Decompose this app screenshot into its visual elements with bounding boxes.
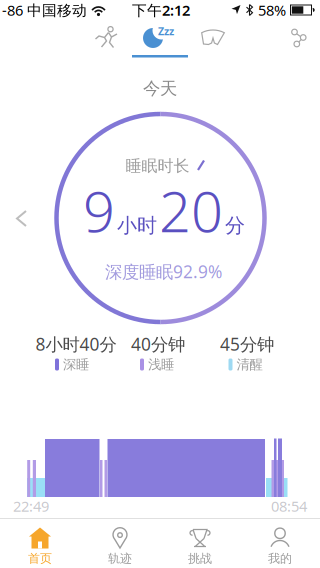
staticText: -86 中国移动: [2, 0, 87, 20]
staticText: 清醒: [236, 356, 262, 373]
staticText: 下午2:12: [132, 0, 190, 20]
button[interactable]: 轨迹: [80, 518, 160, 568]
staticText: 睡眠时长: [125, 156, 189, 176]
button[interactable]: 挑战: [160, 518, 240, 568]
staticText: 小时: [117, 213, 157, 238]
staticText: 轨迹: [108, 551, 132, 566]
staticText: 8小时40分: [35, 332, 116, 355]
button[interactable]: 体重: [200, 29, 226, 45]
staticText: 我的: [268, 551, 292, 566]
button[interactable]: 首页: [0, 518, 80, 568]
staticText: 分: [225, 213, 245, 238]
staticText: 挑战: [188, 551, 212, 566]
staticText: 深度睡眠92.9%: [105, 260, 222, 283]
staticText: 45分钟: [220, 332, 274, 355]
button[interactable]: 我的: [240, 518, 320, 568]
staticText: 20: [159, 173, 223, 248]
button[interactable]: 分享: [291, 28, 307, 47]
button[interactable]: 编辑睡眠时长: [125, 156, 206, 176]
button[interactable]: 睡眠: [142, 25, 174, 49]
staticText: 深睡: [63, 356, 89, 373]
staticText: 今天: [143, 78, 177, 99]
staticText: 22:49: [13, 496, 49, 516]
staticText: 08:54: [271, 496, 307, 516]
button[interactable]: 运动: [94, 26, 118, 48]
button[interactable]: 前一天: [13, 207, 30, 229]
staticText: 9: [83, 173, 115, 248]
staticText: Zzz: [158, 24, 174, 38]
staticText: 首页: [28, 551, 52, 566]
staticText: 58%: [258, 0, 286, 20]
staticText: 40分钟: [131, 332, 185, 355]
staticText: 浅睡: [148, 356, 174, 373]
